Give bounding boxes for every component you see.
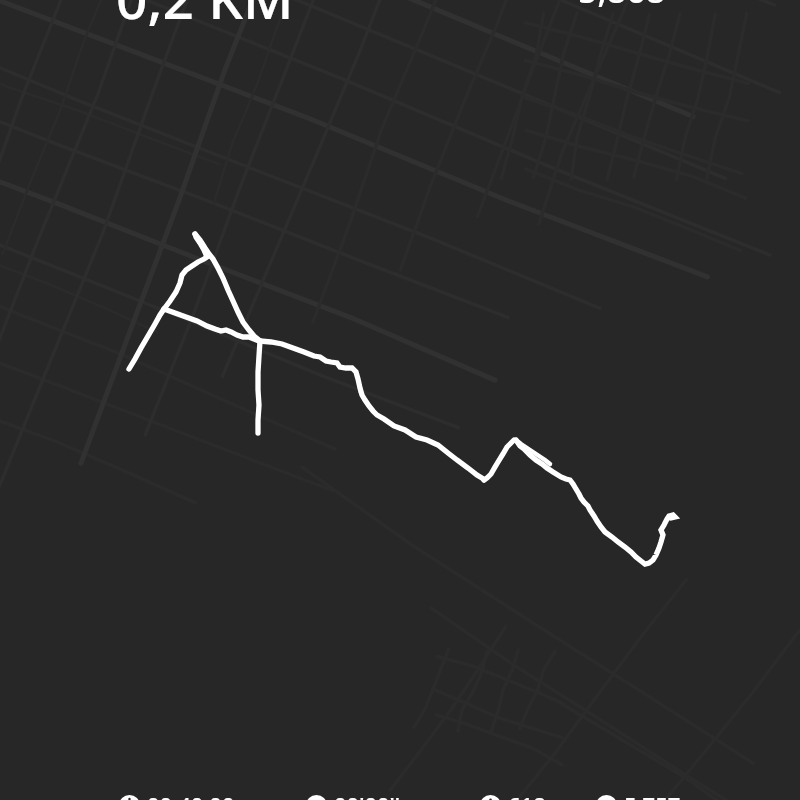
button[interactable]: 618 <box>480 790 546 800</box>
button[interactable]: Activity route map <box>0 0 800 800</box>
staticText: 0,2 KM <box>116 0 294 35</box>
staticText: 618 <box>508 790 546 800</box>
staticText: 5,868 <box>578 0 666 13</box>
button[interactable]: 5.757 <box>596 790 681 800</box>
button[interactable]: 00:40:00 <box>119 790 235 800</box>
button[interactable]: 00'00'' <box>306 790 400 800</box>
staticText: 00:40:00 <box>147 790 235 800</box>
staticText: 00'00'' <box>334 790 400 800</box>
staticText: 5.757 <box>624 790 681 800</box>
